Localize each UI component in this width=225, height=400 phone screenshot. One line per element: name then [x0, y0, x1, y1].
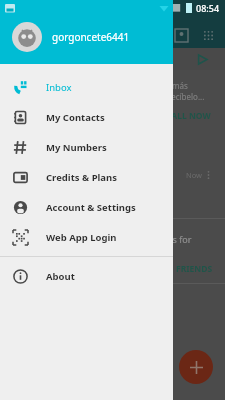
staticText: Account & Settings [46, 201, 136, 214]
staticText: My Contacts [46, 111, 105, 124]
staticText: Credits & Plans [46, 171, 117, 184]
button[interactable]: My Contacts [0, 102, 173, 132]
staticText: My Numbers [46, 141, 107, 154]
staticText: Now [186, 170, 202, 180]
staticText: ds for [167, 233, 192, 245]
staticText: gorgoncete6441 [52, 30, 130, 44]
button[interactable]: gorgoncete6441 [0, 0, 173, 64]
button[interactable]: Web App Login [0, 222, 173, 252]
button[interactable]: My Numbers [0, 132, 173, 162]
staticText: 08:54 [196, 2, 220, 14]
staticText: Web App Login [46, 231, 117, 244]
button[interactable]: About [0, 261, 173, 291]
staticText: más [172, 80, 188, 91]
staticText: FRIENDS [176, 263, 213, 275]
staticText: About [46, 270, 75, 283]
button[interactable]: Credits & Plans [0, 162, 173, 192]
staticText: recíbelo... [168, 91, 205, 102]
staticText: TALL NOW [167, 110, 211, 122]
button[interactable]: Account & Settings [0, 192, 173, 222]
staticText: Inbox [46, 81, 72, 94]
button[interactable]: New message [179, 350, 213, 384]
button[interactable]: Inbox [0, 72, 173, 102]
